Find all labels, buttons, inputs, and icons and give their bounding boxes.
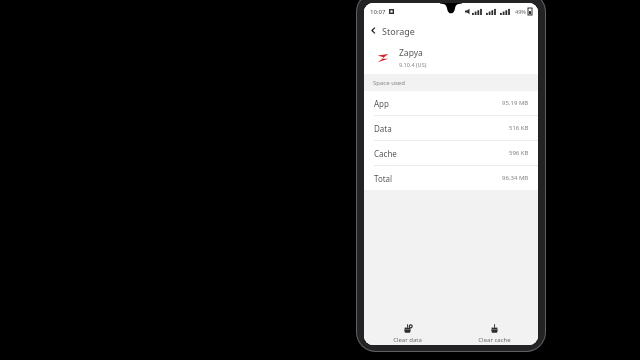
staticText: 96.34 MB	[502, 174, 529, 182]
staticText: 49%	[515, 8, 526, 15]
staticText: Data	[374, 123, 392, 134]
button[interactable]: App	[364, 91, 538, 116]
staticText: Clear cache	[478, 336, 511, 344]
button[interactable]: Cache	[364, 141, 538, 166]
button[interactable]: Clear cache	[451, 317, 538, 345]
staticText: Clear data	[393, 336, 422, 344]
staticText: 596 KB	[509, 149, 529, 157]
staticText: Space used	[373, 79, 405, 87]
staticText: 516 KB	[509, 124, 529, 132]
staticText: Zapya	[399, 47, 423, 59]
staticText: Total	[374, 173, 393, 184]
button[interactable]: Data	[364, 116, 538, 141]
staticText: 9.10.4 (US)	[399, 61, 427, 68]
staticText: Storage	[382, 25, 415, 37]
staticText: 10:07	[370, 8, 386, 16]
button[interactable]: Clear data	[364, 317, 451, 345]
button[interactable]: Zapya	[364, 41, 538, 74]
button[interactable]: Back	[364, 20, 382, 41]
staticText: 95.19 MB	[502, 99, 529, 107]
staticText: Cache	[374, 148, 397, 159]
button[interactable]: Total	[364, 166, 538, 190]
staticText: App	[374, 98, 389, 109]
